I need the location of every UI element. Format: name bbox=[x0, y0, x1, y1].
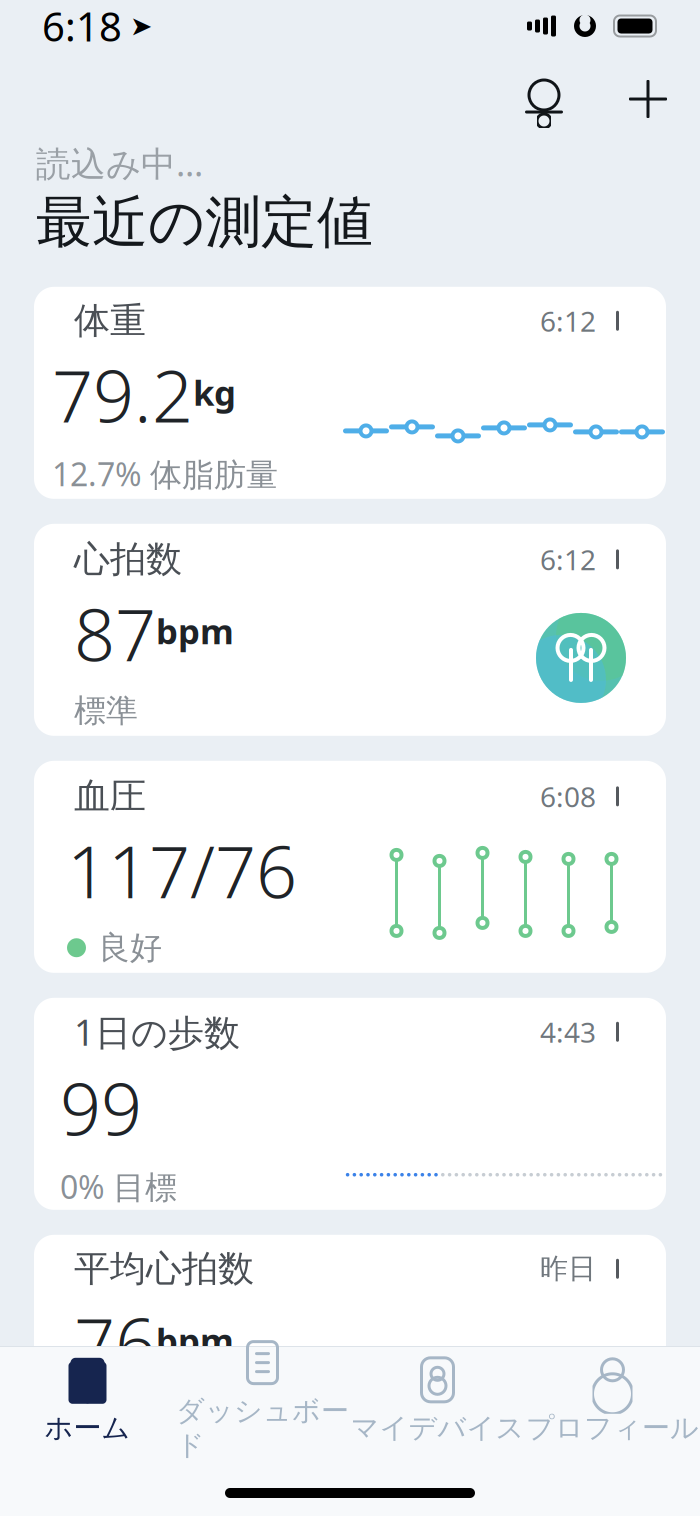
button[interactable]: 平均心拍数 bbox=[34, 1235, 666, 1447]
staticText: 読込み中... bbox=[36, 140, 203, 186]
staticText: 1日の歩数 bbox=[74, 1008, 240, 1056]
staticText: 0% 目標 bbox=[60, 1165, 177, 1208]
staticText: ホーム bbox=[44, 1411, 130, 1445]
button[interactable]: ダッシュボード bbox=[175, 1351, 350, 1451]
staticText: 心拍数 bbox=[74, 537, 182, 581]
button[interactable]: Add measurement bbox=[566, 77, 670, 121]
staticText: プロフィール bbox=[526, 1411, 699, 1445]
staticText: 6:08 bbox=[540, 778, 596, 815]
staticText: マイデバイス bbox=[350, 1411, 524, 1445]
staticText: 昨日 bbox=[540, 1252, 596, 1286]
staticText: 体重 bbox=[74, 299, 146, 343]
staticText: 良好 bbox=[98, 928, 162, 967]
staticText: ダッシュボード bbox=[176, 1394, 349, 1462]
button[interactable]: 1日の歩数 bbox=[34, 998, 666, 1210]
button[interactable]: 体重 bbox=[34, 287, 666, 499]
staticText: 4:43 bbox=[540, 1013, 596, 1050]
staticText: 平均心拍数 bbox=[74, 1247, 254, 1291]
staticText: 6:18 bbox=[42, 0, 122, 52]
staticText: 6:12 bbox=[540, 302, 596, 339]
staticText: 76 bbox=[74, 1295, 156, 1390]
staticText: 87 bbox=[74, 585, 156, 681]
button[interactable]: マイデバイス bbox=[350, 1351, 525, 1451]
staticText: bpm bbox=[156, 1317, 234, 1363]
staticText: bpm bbox=[156, 608, 234, 654]
staticText: 79.2 bbox=[52, 347, 193, 442]
button[interactable]: ホーム bbox=[0, 1351, 175, 1451]
staticText: ➤ bbox=[130, 11, 152, 41]
staticText: 血圧 bbox=[74, 774, 146, 818]
staticText: 99 bbox=[60, 1060, 142, 1155]
staticText: 12.7% 体脂肪量 bbox=[52, 452, 278, 495]
staticText: 6:12 bbox=[540, 541, 596, 578]
staticText: kg bbox=[193, 369, 236, 415]
button[interactable]: Notifications bbox=[522, 74, 566, 124]
button[interactable]: 血圧 bbox=[34, 761, 666, 973]
button[interactable]: プロフィール bbox=[525, 1351, 700, 1451]
staticText: 標準 bbox=[74, 691, 138, 730]
staticText: 最近の測定値 bbox=[36, 188, 373, 257]
button[interactable]: 心拍数 bbox=[34, 524, 666, 736]
staticText: 117/76 bbox=[67, 822, 297, 918]
